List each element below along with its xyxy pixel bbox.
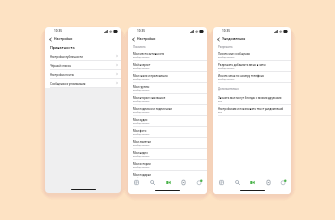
staticText: Вообще ничего [133, 155, 150, 158]
staticText: 10:35 [54, 29, 62, 33]
button[interactable]: Search [231, 178, 243, 187]
button[interactable]: Мои места активности [128, 50, 207, 60]
button[interactable]: Мои группы [128, 83, 207, 93]
button[interactable]: Мои аудио [128, 116, 207, 126]
staticText: Вообще ничего [133, 100, 150, 103]
staticText: Мои группы [133, 85, 150, 88]
button[interactable]: Мои заметки [128, 138, 207, 148]
button[interactable]: Мой возраст [128, 61, 207, 71]
button[interactable]: Мои подарки [128, 171, 207, 181]
staticText: Писать мне сообщения [218, 52, 250, 55]
staticText: Вообще ничего [133, 89, 150, 92]
staticText: Мои друзья [133, 184, 150, 187]
button[interactable]: Искать меня по номеру телефона [213, 72, 291, 82]
staticText: Дополнительно [218, 87, 239, 90]
staticText: Настройки публичности [50, 55, 83, 58]
staticText: Вообще ничего [133, 67, 150, 70]
button[interactable]: Мои друзья [128, 182, 207, 192]
staticText: Показать [133, 45, 146, 48]
staticText: Вообще ничего [133, 56, 150, 59]
button[interactable]: VK [246, 178, 258, 187]
staticText: Уведомления [222, 37, 246, 41]
staticText: Мои заметки [133, 140, 151, 143]
button[interactable]: Мои вторые связанные [128, 94, 207, 104]
button[interactable]: Разрешать добавлять меня в чаты [213, 61, 291, 71]
staticText: Разрешить [218, 45, 233, 48]
staticText: Настройками и показывать текст уведомлен… [218, 107, 284, 110]
button[interactable]: Back [130, 36, 136, 42]
button[interactable]: Мои истории [128, 160, 207, 170]
staticText: Вообще ничего [133, 144, 150, 147]
button[interactable]: Писать мне сообщения [213, 50, 291, 60]
button[interactable]: Мои связи и приложения [128, 72, 207, 82]
staticText: Чёрный список [50, 64, 72, 67]
staticText: Мои места активности [133, 52, 165, 55]
staticText: Настройки [137, 37, 156, 41]
staticText: Мои истории [133, 162, 151, 165]
staticText: Все [218, 111, 222, 114]
staticText: Мои подписки и подписчики [133, 107, 172, 110]
staticText: Мои фото [133, 129, 147, 132]
staticText: Мой возраст [133, 63, 151, 66]
staticText: Разрешать добавлять меня в чаты [218, 63, 266, 66]
staticText: Вообще ничего [133, 122, 150, 125]
button[interactable]: Clips [177, 178, 189, 187]
staticText: Вообще ничего [218, 67, 235, 70]
staticText: Вообще ничего [218, 56, 235, 59]
button[interactable]: VK [162, 178, 174, 187]
staticText: Мои аудио [133, 118, 148, 121]
staticText: Вообще ничего [133, 133, 150, 136]
button[interactable]: Звонить мне могут беседы с моими друзьям… [213, 94, 291, 104]
staticText: Вообще ничего [218, 78, 235, 81]
staticText: Вообще ничего [133, 78, 150, 81]
button[interactable]: News [215, 178, 227, 187]
staticText: Настройка почты [50, 73, 74, 76]
button[interactable]: Настройка почты [45, 70, 121, 78]
staticText: Мои подарки [133, 173, 151, 176]
button[interactable]: Сообщения и упоминания [45, 79, 121, 87]
staticText: Вообще ничего [133, 111, 150, 114]
staticText: Мои видео [133, 151, 148, 154]
button[interactable]: Мои фото [128, 127, 207, 137]
button[interactable]: Настройками и показывать текст уведомлен… [213, 105, 291, 115]
staticText: Искать меня по номеру телефона [218, 74, 264, 77]
button[interactable]: Чёрный список [45, 61, 121, 69]
staticText: Вообще ничего [133, 166, 150, 169]
button[interactable]: Back [47, 36, 53, 42]
staticText: Мои вторые связанные [133, 96, 166, 99]
button[interactable]: Profile [277, 178, 289, 187]
staticText: Настройки [54, 37, 73, 41]
button[interactable]: Clips [262, 178, 274, 187]
staticText: Приватность [50, 45, 75, 50]
button[interactable]: Настройки публичности [45, 52, 121, 60]
staticText: Звонить мне могут беседы с моими друзьям… [218, 96, 282, 99]
button[interactable]: Search [146, 178, 158, 187]
staticText: Все [218, 100, 222, 103]
button[interactable]: Back [215, 36, 221, 42]
staticText: Вообще ничего [133, 177, 150, 180]
button[interactable]: Мои подписки и подписчики [128, 105, 207, 115]
staticText: Сообщения и упоминания [50, 82, 86, 85]
staticText: Мои связи и приложения [133, 74, 168, 77]
button[interactable]: Мои видео [128, 149, 207, 159]
button[interactable]: News [130, 178, 142, 187]
staticText: 10:35 [137, 29, 145, 33]
button[interactable]: Profile [193, 178, 205, 187]
staticText: 10:35 [222, 29, 230, 33]
